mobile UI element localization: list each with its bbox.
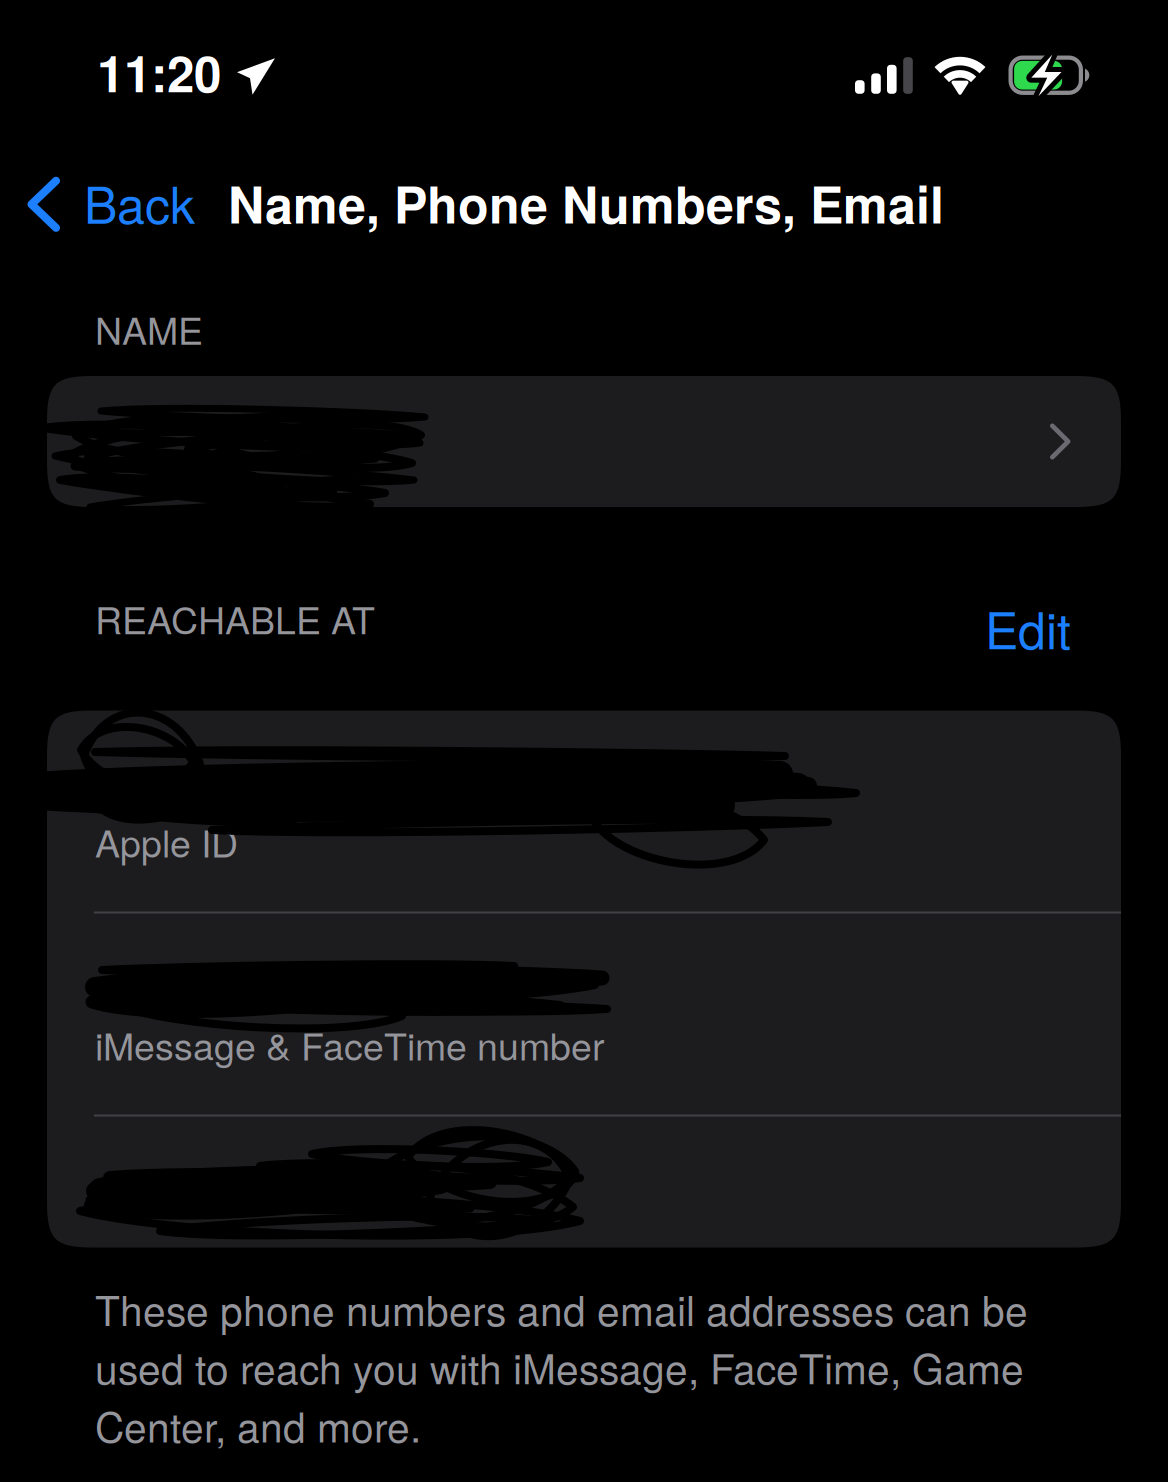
button[interactable]: Apple ID: [47, 710, 1121, 911]
staticText: Edit: [985, 592, 1071, 663]
staticText: NAME: [95, 302, 203, 355]
staticText: Back: [84, 166, 195, 238]
button[interactable]: Back: [0, 152, 212, 248]
button[interactable]: [47, 376, 1121, 507]
staticText: Apple ID: [95, 815, 238, 868]
button[interactable]: iMessage & FaceTime number: [47, 911, 1121, 1114]
staticText: iMessage & FaceTime number: [95, 1018, 604, 1071]
staticText: REACHABLE AT: [95, 591, 375, 645]
staticText: Name, Phone Numbers, Email: [228, 167, 944, 239]
button[interactable]: [47, 1114, 1121, 1247]
staticText: These phone numbers and email addresses …: [95, 1279, 1028, 1454]
staticText: 11:20: [97, 37, 221, 107]
button[interactable]: Edit: [985, 592, 1105, 650]
